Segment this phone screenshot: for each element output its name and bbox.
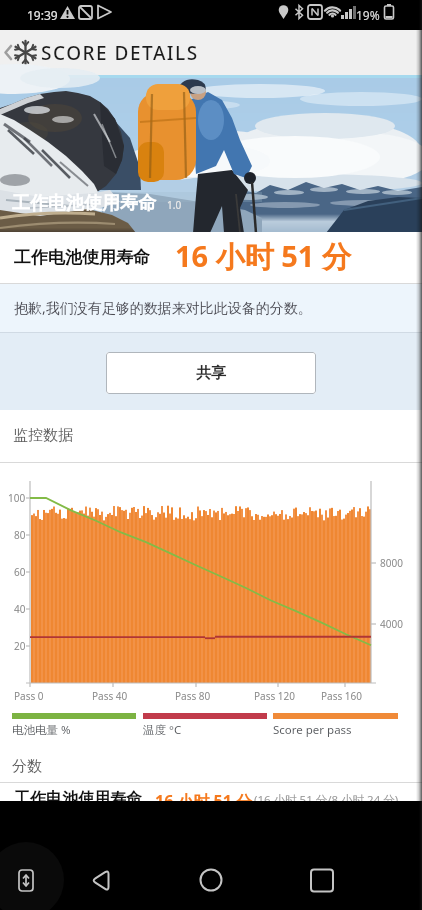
button[interactable] bbox=[105, 801, 210, 910]
button[interactable] bbox=[0, 30, 40, 75]
button[interactable] bbox=[210, 801, 316, 910]
staticText: 温度 °C bbox=[143, 722, 182, 738]
staticText: (16 小时 51 分/8 小时 24 分) bbox=[254, 792, 399, 801]
staticText: 100 bbox=[8, 491, 26, 505]
staticText: 电池电量 % bbox=[12, 722, 71, 738]
staticText: 16 小时 51 分 bbox=[155, 790, 253, 801]
staticText: Pass 160 bbox=[321, 689, 362, 703]
staticText: 80 bbox=[14, 528, 26, 542]
staticText: SCORE DETAILS bbox=[41, 40, 199, 66]
staticText: Pass 80 bbox=[175, 689, 211, 703]
staticText: 共享 bbox=[196, 364, 226, 383]
staticText: 4000 bbox=[380, 617, 403, 631]
staticText: 8000 bbox=[380, 556, 403, 570]
staticText: 20 bbox=[14, 639, 26, 653]
button[interactable] bbox=[316, 801, 422, 910]
staticText: 工作电池使用寿命 bbox=[14, 247, 150, 268]
staticText: 1.0 bbox=[167, 198, 182, 212]
staticText: 工作电池使用寿命 bbox=[12, 192, 156, 215]
staticText: 40 bbox=[14, 602, 26, 616]
staticText: 抱歉,我们没有足够的数据来对比此设备的分数。 bbox=[14, 298, 312, 317]
staticText: Pass 120 bbox=[254, 689, 295, 703]
button[interactable]: 共享 bbox=[106, 352, 316, 394]
staticText: 分数 bbox=[12, 757, 42, 776]
staticText: 19% bbox=[356, 7, 380, 23]
staticText: 工作电池使用寿命 bbox=[14, 789, 142, 801]
staticText: 19:39 bbox=[27, 7, 58, 23]
button[interactable]: 工作电池使用寿命 bbox=[0, 783, 422, 801]
button[interactable] bbox=[0, 801, 105, 910]
staticText: Score per pass bbox=[273, 722, 352, 738]
staticText: 监控数据 bbox=[13, 426, 73, 445]
staticText: 16 小时 51 分 bbox=[175, 236, 351, 276]
staticText: 60 bbox=[14, 565, 26, 579]
staticText: Pass 40 bbox=[92, 689, 128, 703]
staticText: Pass 0 bbox=[14, 689, 44, 703]
